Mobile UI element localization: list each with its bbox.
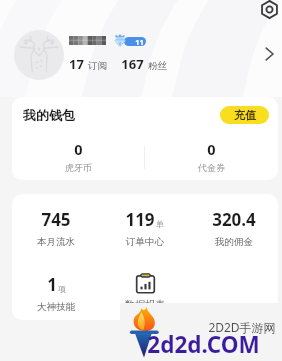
button[interactable]: 0: [12, 139, 145, 173]
staticText: 订单中心: [126, 236, 164, 248]
button[interactable]: Open profile: [256, 41, 282, 67]
staticText: 我的钱包: [23, 107, 75, 123]
button[interactable]: 745: [12, 208, 100, 248]
staticText: 订阅: [88, 60, 107, 72]
staticText: 本月流水: [37, 236, 75, 248]
staticText: 2d2d.COM: [147, 329, 260, 360]
staticText: 我的佣金: [215, 236, 253, 248]
staticText: 单: [156, 219, 164, 229]
staticText: 119: [125, 208, 155, 231]
staticText: 大神技能: [37, 301, 75, 313]
staticText: 1: [47, 273, 57, 296]
staticText: 745: [41, 208, 71, 231]
staticText: 充值: [234, 108, 256, 122]
staticText: 167: [121, 55, 144, 73]
staticText: 17: [69, 55, 84, 73]
button[interactable]: Data report: [125, 273, 165, 311]
staticText: 0: [207, 139, 216, 159]
button[interactable]: 1: [12, 273, 100, 313]
staticText: 数据报表: [125, 298, 165, 311]
staticText: 320.4: [212, 208, 256, 231]
button[interactable]: 320.4: [189, 208, 278, 248]
staticText: 粉丝: [148, 60, 167, 72]
staticText: 2D2D手游网: [208, 319, 276, 335]
button[interactable]: Profile photo: [14, 30, 64, 80]
staticText: 0: [74, 139, 83, 159]
button[interactable]: Settings: [255, 0, 282, 23]
button[interactable]: 充值: [220, 106, 269, 124]
staticText: 虎牙币: [65, 162, 92, 173]
staticText: 项: [58, 284, 66, 294]
button[interactable]: 119: [100, 208, 189, 248]
staticText: 代金券: [198, 162, 225, 173]
button[interactable]: 0: [145, 139, 278, 173]
staticText: 11: [135, 37, 144, 46]
